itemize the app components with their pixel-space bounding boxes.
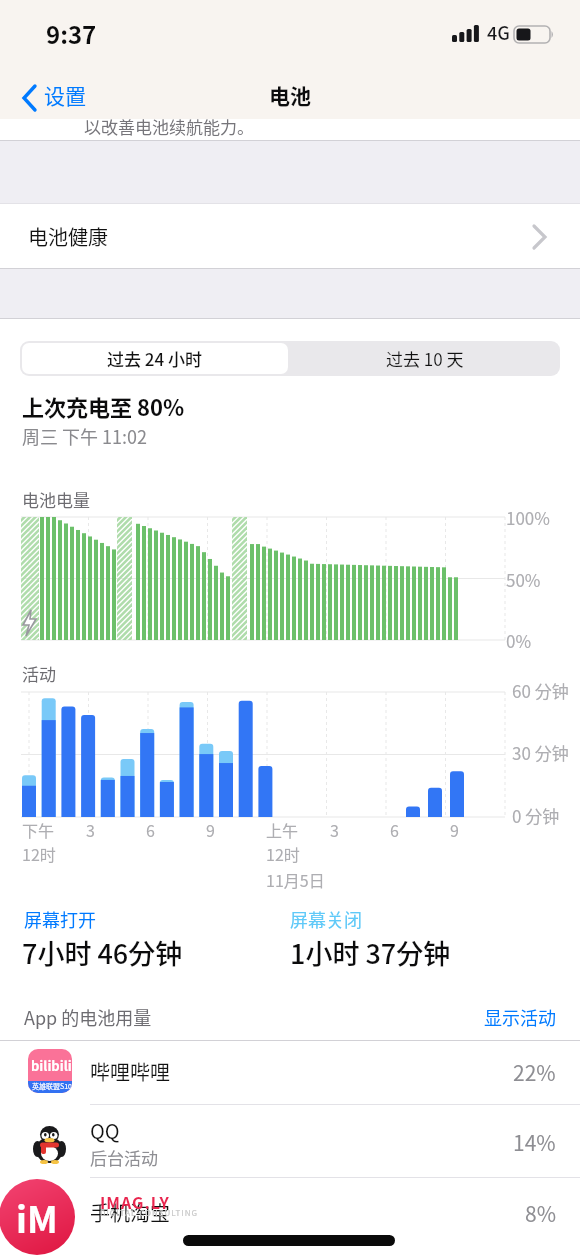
staticText: 显示活动 [484, 1004, 556, 1030]
button[interactable]: 手机淘宝 [0, 1178, 580, 1255]
staticText: 9:37 [46, 16, 97, 51]
staticText: 8% [525, 1198, 556, 1228]
staticText: DIGITAL CONSULTING [100, 1207, 198, 1219]
staticText: 100% [506, 505, 550, 530]
staticText: 60 分钟 [512, 678, 569, 703]
button[interactable]: 过去 10 天 [290, 341, 560, 376]
staticText: 上次充电至 80% [22, 390, 185, 422]
staticText: bilibili [31, 1056, 72, 1075]
staticText: 3 [330, 818, 339, 841]
staticText: 9 [450, 818, 459, 841]
staticText: 7小时 46分钟 [22, 933, 183, 972]
staticText: 22% [513, 1057, 556, 1087]
staticText: 0 分钟 [512, 803, 560, 828]
staticText: QQ [90, 1116, 120, 1145]
button[interactable]: 显示活动 [456, 1004, 556, 1030]
staticText: 4G [487, 19, 510, 45]
staticText: 后台活动 [90, 1145, 158, 1170]
staticText: 50% [506, 567, 541, 592]
staticText: 下午 [22, 818, 55, 841]
staticText: 6 [390, 818, 399, 841]
staticText: 1小时 37分钟 [290, 933, 451, 972]
staticText: iM [16, 1191, 58, 1243]
staticText: 14% [513, 1127, 556, 1157]
staticText: 哔哩哔哩 [90, 1057, 170, 1086]
button[interactable]: bilibili [0, 1041, 580, 1104]
staticText: IMAG.LY [100, 1190, 170, 1213]
staticText: 过去 10 天 [386, 346, 464, 371]
staticText: 3 [86, 818, 95, 841]
staticText: 手机淘宝 [90, 1198, 170, 1227]
staticText: 电池健康 [28, 222, 108, 251]
staticText: 12时 [266, 842, 300, 865]
button[interactable]: 电池健康 [0, 204, 580, 268]
staticText: 活动 [22, 661, 56, 686]
staticText: 周三 下午 11:02 [22, 423, 148, 449]
staticText: App 的电池用量 [24, 1004, 152, 1030]
staticText: 以改善电池续航能力。 [84, 114, 254, 139]
staticText: 电池电量 [22, 487, 90, 512]
staticText: 过去 24 小时 [107, 346, 203, 371]
staticText: 英雄联盟S10 [32, 1081, 72, 1091]
staticText: 30 分钟 [512, 740, 569, 765]
staticText: 屏幕关闭 [290, 906, 362, 932]
staticText: 6 [146, 818, 155, 841]
staticText: 电池 [269, 80, 311, 110]
staticText: 12时 [22, 842, 56, 865]
button[interactable]: 过去 24 小时 [22, 343, 288, 374]
staticText: 设置 [44, 80, 86, 110]
staticText: 0% [506, 628, 532, 653]
staticText: 上午 [266, 818, 299, 841]
button[interactable]: 设置 [16, 80, 106, 116]
button[interactable]: QQ [0, 1105, 580, 1177]
staticText: 屏幕打开 [24, 906, 96, 932]
staticText: 11月5日 [266, 868, 325, 891]
staticText: 9 [206, 818, 215, 841]
